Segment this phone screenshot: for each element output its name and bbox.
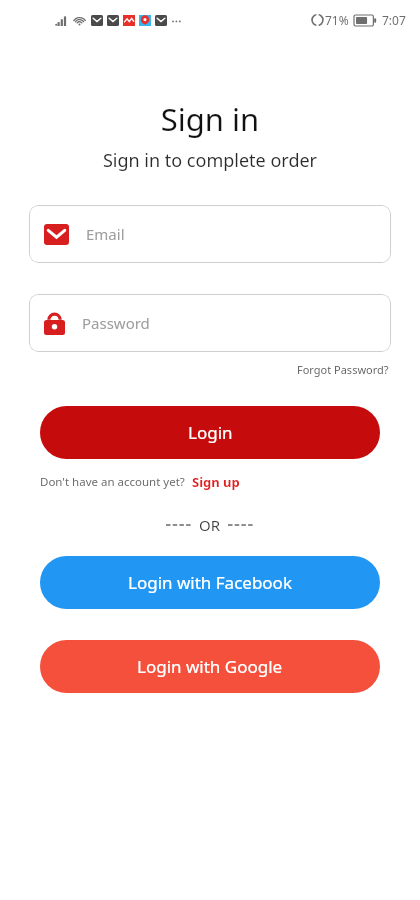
button[interactable]: Email	[29, 205, 391, 263]
staticText: Sign in	[0, 98, 420, 140]
button[interactable]: Password	[29, 294, 391, 352]
staticText: Login with Facebook	[128, 571, 292, 594]
button[interactable]: Login with Google	[40, 640, 380, 693]
staticText: Email	[86, 224, 125, 244]
staticText: Password	[82, 313, 150, 333]
button[interactable]: Login	[40, 406, 380, 459]
staticText: 71%	[325, 12, 349, 28]
button[interactable]: Login with Facebook	[40, 556, 380, 609]
staticText: Forgot Password?	[297, 362, 389, 377]
staticText: Sign up	[192, 473, 240, 491]
staticText: Don't have an account yet?	[40, 474, 185, 490]
button[interactable]: Forgot Password?	[295, 360, 391, 379]
staticText: OR	[199, 515, 221, 535]
staticText: Sign in to complete order	[0, 148, 420, 173]
staticText: Login	[188, 421, 233, 444]
button[interactable]: Sign up	[190, 471, 242, 493]
staticText: 7:07	[382, 12, 406, 28]
staticText: Login with Google	[137, 655, 283, 678]
